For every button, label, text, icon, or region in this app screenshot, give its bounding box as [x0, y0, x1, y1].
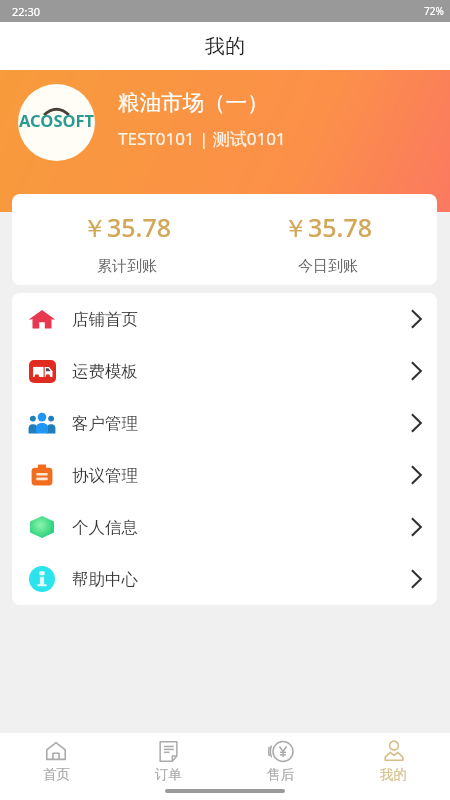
staticText: TEST0101 | 测试0101 [118, 127, 286, 150]
button[interactable]: 客户管理 [12, 397, 437, 449]
staticText: 粮油市场（一） [118, 89, 269, 116]
staticText: ￥35.78 [283, 210, 373, 244]
staticText: 22:30 [12, 4, 41, 19]
staticText: 累计到账 [97, 257, 157, 276]
button[interactable]: 帮助中心 [12, 553, 437, 605]
staticText: 72% [424, 4, 444, 18]
staticText: 帮助中心 [72, 569, 411, 590]
staticText: 订单 [155, 766, 182, 783]
button[interactable]: 运费模板 [12, 345, 437, 397]
staticText: 售后 [267, 766, 294, 783]
staticText: ACOSOFT [19, 109, 95, 131]
button[interactable]: 个人信息 [12, 501, 437, 553]
staticText: 协议管理 [72, 465, 411, 486]
button[interactable]: 首页 [0, 733, 112, 786]
staticText: 我的 [380, 766, 407, 783]
button[interactable]: 售后 [224, 733, 337, 786]
staticText: 我的 [205, 34, 245, 59]
staticText: ￥35.78 [82, 210, 172, 244]
staticText: 首页 [43, 766, 70, 783]
staticText: 客户管理 [72, 413, 411, 434]
staticText: 运费模板 [72, 361, 411, 382]
button[interactable]: 协议管理 [12, 449, 437, 501]
staticText: 今日到账 [298, 257, 358, 276]
button[interactable]: 我的 [337, 733, 450, 786]
staticText: 店铺首页 [72, 309, 411, 330]
button[interactable]: 订单 [112, 733, 224, 786]
staticText: 个人信息 [72, 517, 411, 538]
button[interactable]: 店铺首页 [12, 293, 437, 345]
